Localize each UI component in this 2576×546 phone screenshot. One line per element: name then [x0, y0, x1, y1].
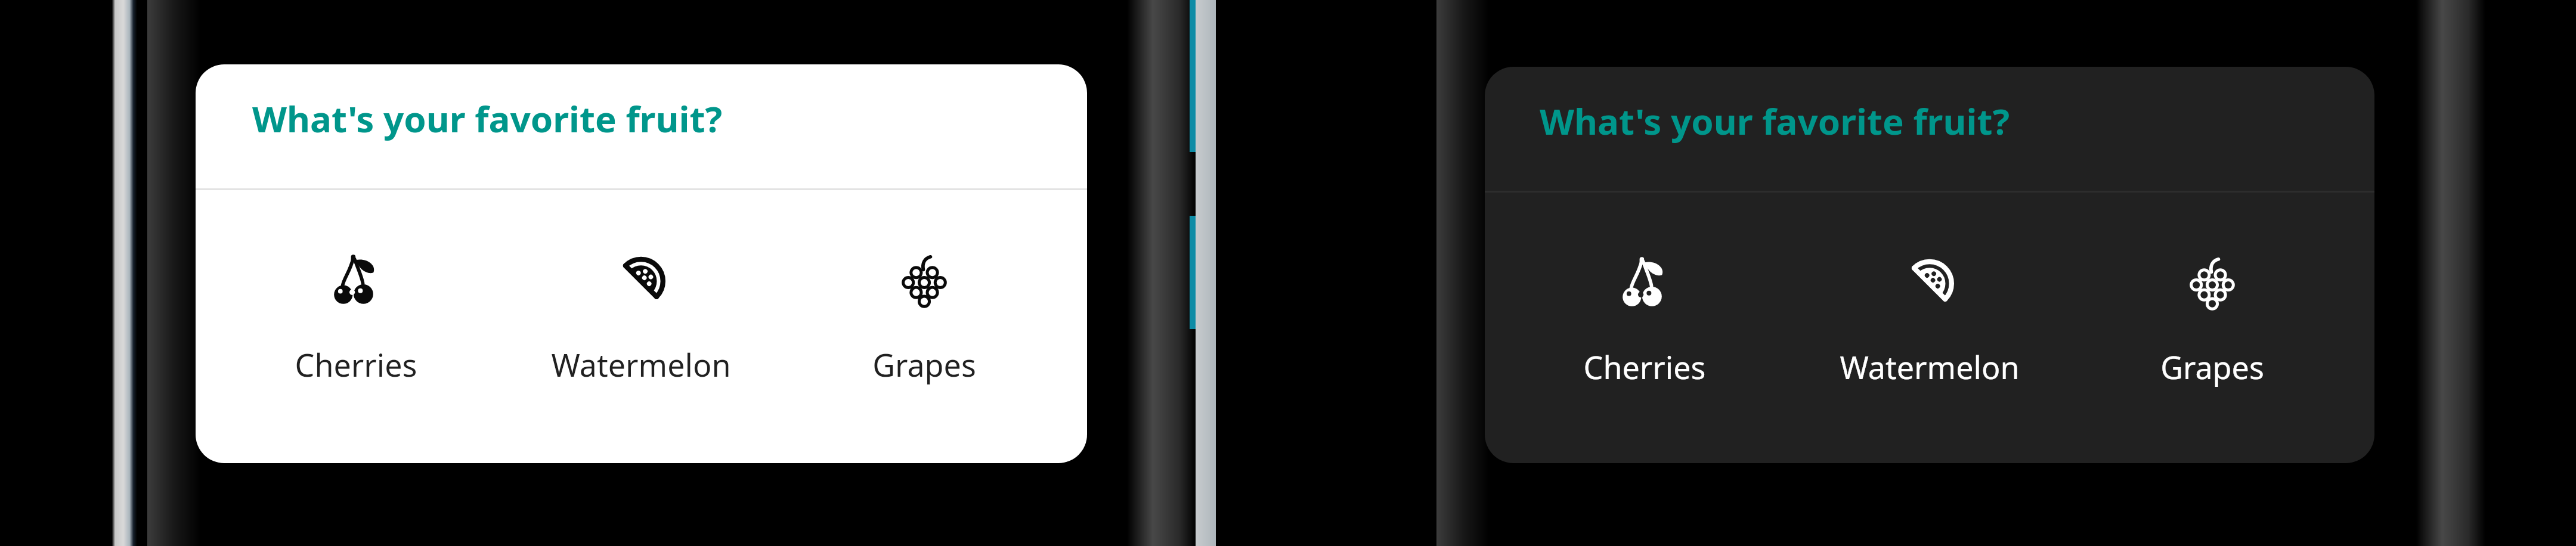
- button[interactable]: Grapes: [823, 241, 1026, 420]
- staticText: Grapes: [2111, 346, 2314, 388]
- button[interactable]: Cherries: [255, 241, 457, 420]
- staticText: Watermelon: [1828, 346, 2031, 388]
- button[interactable]: Watermelon: [1828, 243, 2031, 422]
- staticText: What's your favorite fruit?: [1540, 97, 2010, 145]
- staticText: Grapes: [823, 343, 1026, 386]
- staticText: Watermelon: [540, 343, 742, 386]
- staticText: Cherries: [1543, 346, 1746, 388]
- button[interactable]: Cherries: [1543, 243, 1746, 422]
- button[interactable]: Grapes: [2111, 243, 2314, 422]
- button[interactable]: What's your favorite fruit?: [1485, 67, 2374, 463]
- button[interactable]: What's your favorite fruit?: [196, 64, 1087, 463]
- staticText: Cherries: [255, 343, 457, 386]
- button[interactable]: Watermelon: [540, 241, 742, 420]
- staticText: What's your favorite fruit?: [252, 94, 723, 143]
